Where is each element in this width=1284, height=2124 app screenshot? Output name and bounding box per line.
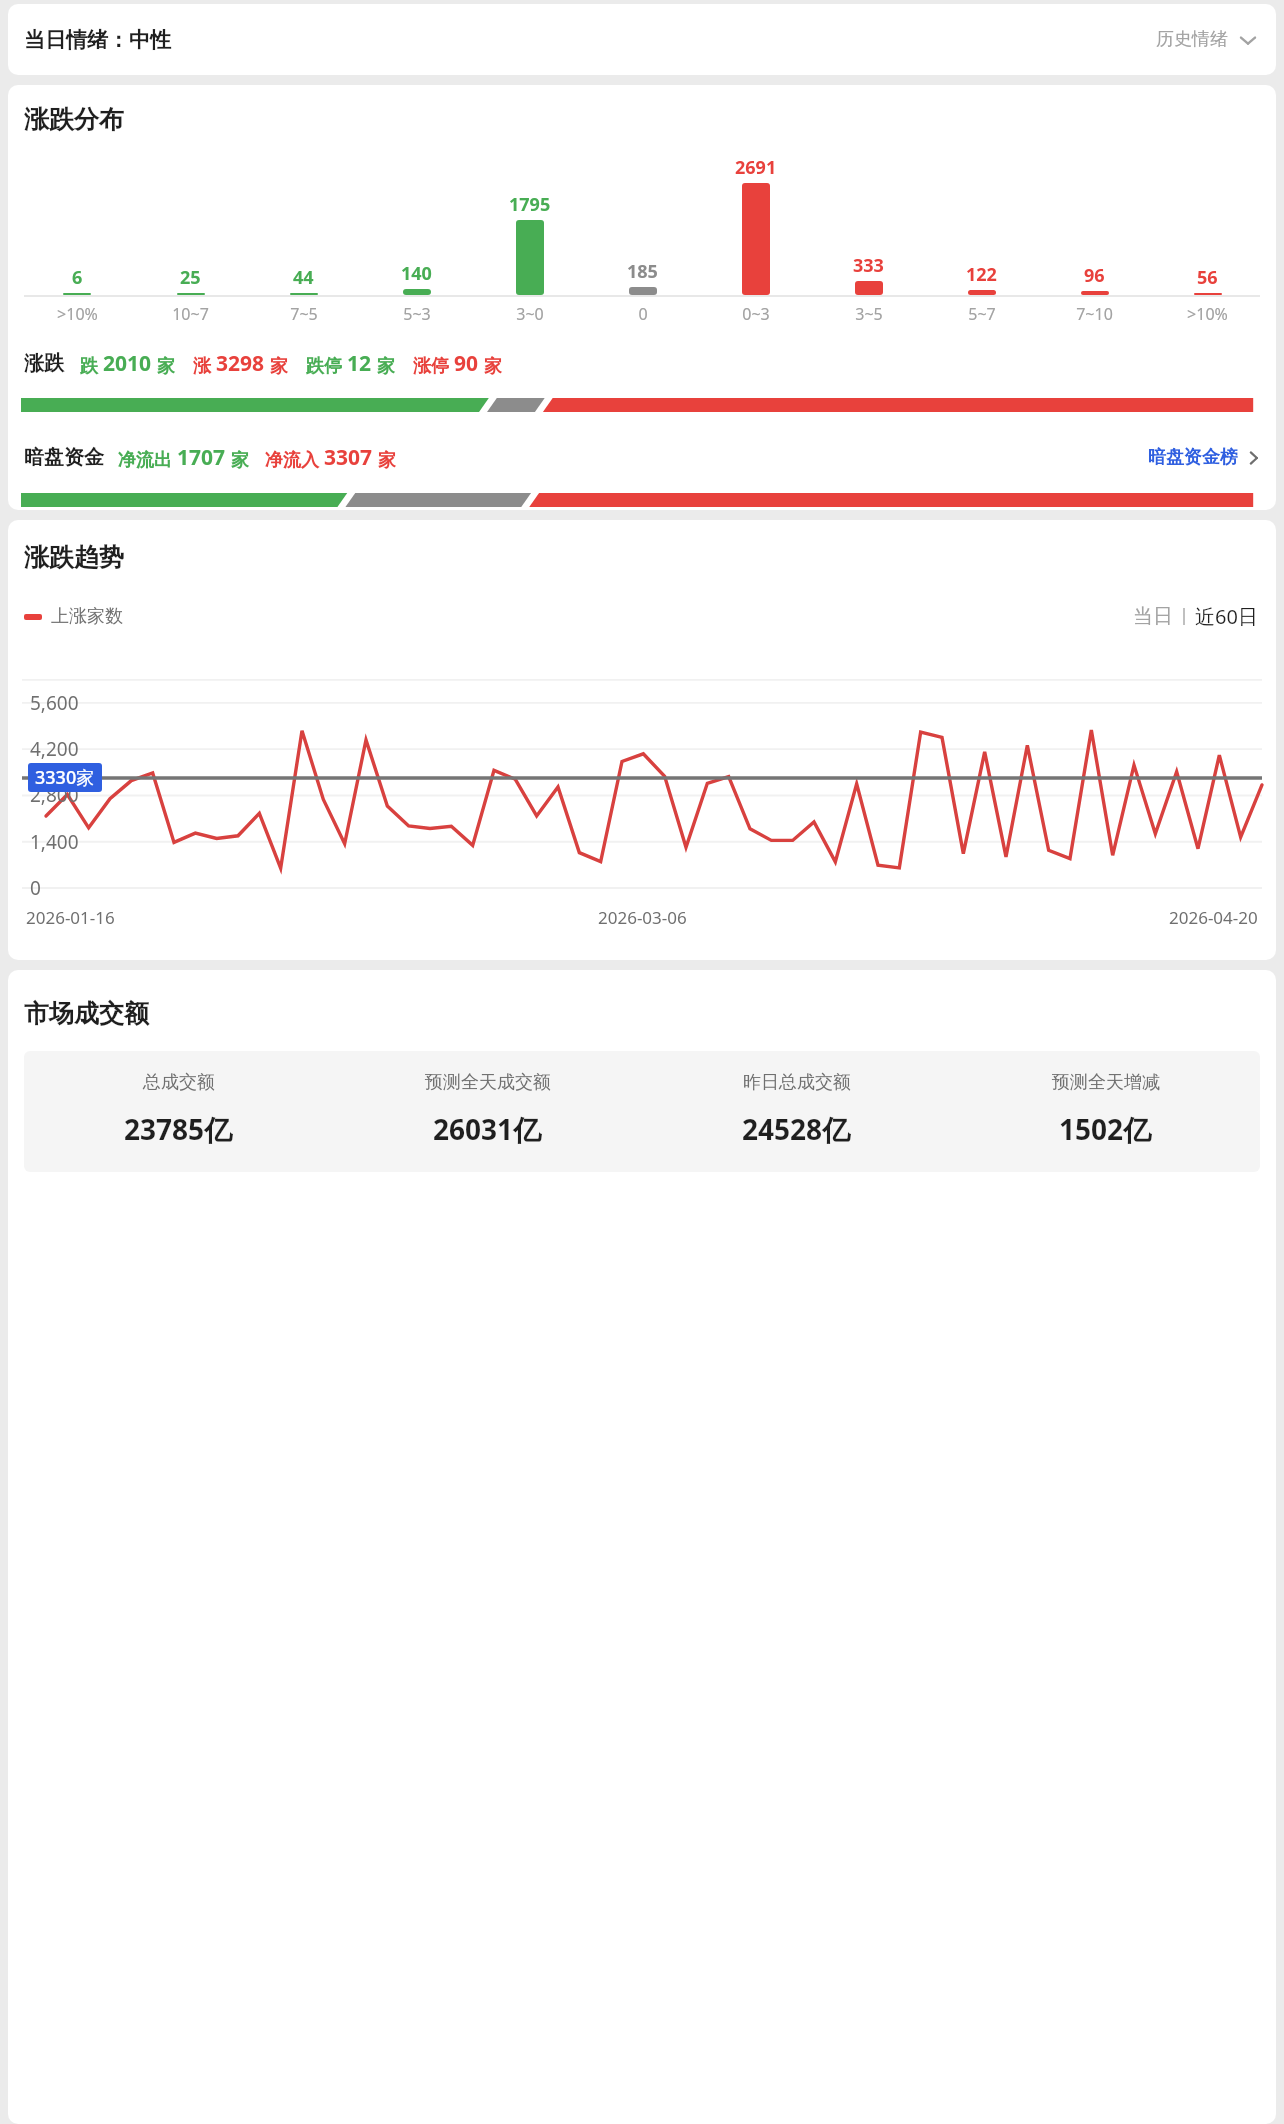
staticText: 140 [401, 261, 432, 286]
other: Expand history [1238, 30, 1258, 50]
staticText: 25 [180, 265, 201, 290]
staticText: 7~5 [290, 303, 318, 325]
staticText: 跌 [80, 355, 98, 378]
staticText: 333 [853, 253, 884, 278]
staticText: 家 [157, 355, 175, 378]
staticText: 2,800 [30, 782, 79, 808]
button[interactable]: 预测全天增减 [951, 1071, 1260, 1148]
staticText: >10% [57, 303, 98, 325]
staticText: 昨日总成交额 [743, 1071, 851, 1094]
staticText: 3~5 [855, 303, 883, 325]
staticText: 96 [1084, 263, 1105, 288]
staticText: 预测全天成交额 [425, 1071, 551, 1094]
staticText: 净流出 [118, 449, 172, 472]
button[interactable]: 近60日 [1193, 597, 1260, 636]
staticText: 2026-04-20 [1169, 906, 1258, 929]
staticText: 23785亿 [124, 1110, 233, 1148]
staticText: 家 [378, 449, 396, 472]
staticText: 0~3 [742, 303, 770, 325]
button[interactable]: 总成交额 [24, 1071, 333, 1148]
staticText: 26031亿 [433, 1110, 542, 1148]
staticText: 0 [638, 303, 648, 325]
staticText: 44 [293, 265, 314, 290]
staticText: 市场成交额 [24, 998, 149, 1029]
staticText: 5~7 [968, 303, 996, 325]
staticText: 近60日 [1195, 603, 1258, 630]
staticText: 56 [1197, 265, 1218, 290]
staticText: 涨跌分布 [24, 104, 124, 135]
staticText: 6 [72, 265, 83, 290]
button[interactable]: 历史情绪 [1152, 20, 1262, 59]
staticText: 1795 [509, 192, 551, 217]
staticText: 涨 [193, 355, 211, 378]
staticText: 24528亿 [742, 1110, 851, 1148]
staticText: 家 [377, 355, 395, 378]
staticText: 当日情绪：中性 [24, 27, 171, 53]
staticText: 90 [454, 349, 479, 378]
staticText: 1707 [177, 443, 226, 472]
staticText: 0 [30, 875, 41, 901]
staticText: 10~7 [172, 303, 209, 325]
staticText: 暗盘资金 [24, 445, 104, 470]
staticText: 5,600 [30, 690, 79, 716]
staticText: 185 [627, 259, 658, 284]
button[interactable]: 涨跌 [8, 349, 1276, 378]
staticText: 4,200 [30, 736, 79, 762]
staticText: 122 [966, 262, 997, 287]
button[interactable]: 暗盘资金榜 [1148, 440, 1262, 475]
staticText: 2026-03-06 [598, 906, 687, 929]
staticText: 2691 [735, 155, 777, 180]
staticText: 跌停 [306, 355, 342, 378]
staticText: 3~0 [516, 303, 544, 325]
staticText: 暗盘资金榜 [1148, 446, 1238, 469]
staticText: 7~10 [1076, 303, 1113, 325]
button[interactable]: 昨日总成交额 [642, 1071, 951, 1148]
staticText: >10% [1187, 303, 1228, 325]
staticText: 2026-01-16 [26, 906, 115, 929]
staticText: 1,400 [30, 829, 79, 855]
staticText: 涨跌趋势 [24, 542, 124, 573]
staticText: 2010 [103, 349, 152, 378]
staticText: 净流入 [265, 449, 319, 472]
staticText: 涨停 [413, 355, 449, 378]
staticText: 涨跌 [24, 351, 64, 376]
staticText: 历史情绪 [1156, 28, 1228, 51]
staticText: 家 [231, 449, 249, 472]
staticText: 3330家 [35, 765, 95, 790]
staticText: 5~3 [403, 303, 431, 325]
staticText: 3307 [324, 443, 373, 472]
staticText: 12 [347, 349, 372, 378]
staticText: 预测全天增减 [1052, 1071, 1160, 1094]
staticText: 上涨家数 [51, 605, 123, 628]
button[interactable]: 预测全天成交额 [333, 1071, 642, 1148]
staticText: 总成交额 [143, 1071, 215, 1094]
staticText: 家 [270, 355, 288, 378]
staticText: 当日 [1133, 604, 1173, 629]
staticText: 3298 [216, 349, 265, 378]
staticText: 家 [484, 355, 502, 378]
staticText: 1502亿 [1059, 1110, 1152, 1148]
button[interactable]: 当日 [1131, 598, 1175, 635]
